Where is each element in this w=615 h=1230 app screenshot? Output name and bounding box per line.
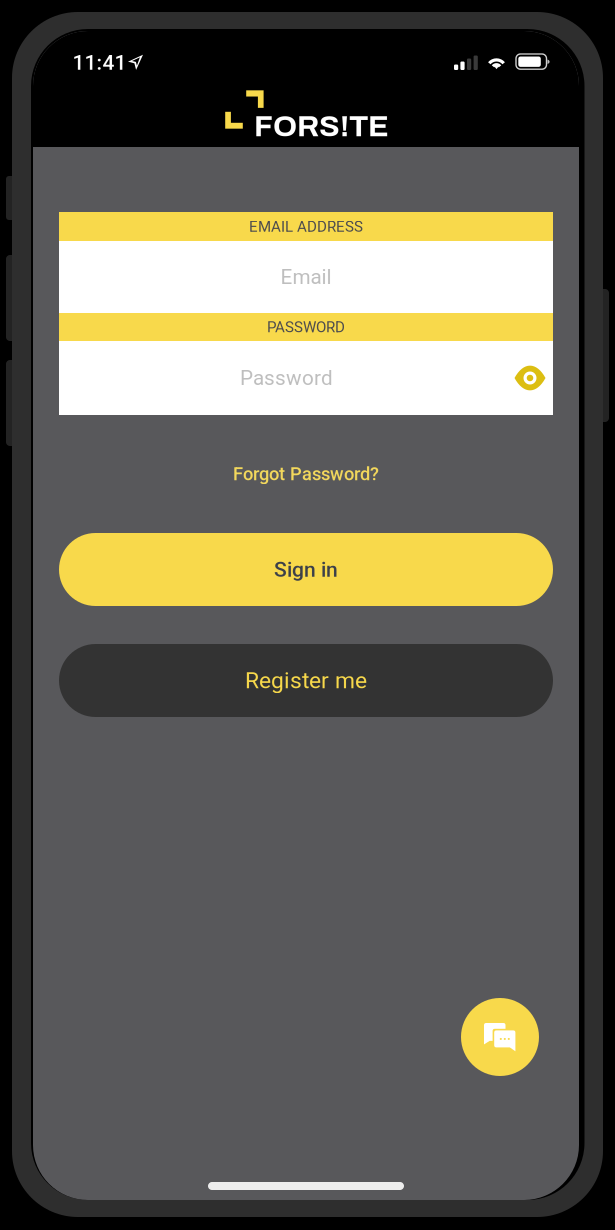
staticText: PASSWORD — [267, 318, 345, 336]
button[interactable]: Sign in — [59, 533, 553, 606]
button[interactable]: Show password — [499, 341, 561, 415]
staticText: Password — [240, 366, 333, 390]
staticText: Register me — [245, 667, 367, 694]
button[interactable]: Forgot Password? — [166, 454, 446, 494]
staticText: Email — [280, 265, 331, 289]
button[interactable]: Chat support — [461, 998, 539, 1076]
button[interactable]: Register me — [59, 644, 553, 717]
staticText: EMAIL ADDRESS — [249, 218, 363, 235]
staticText: FORS!TE — [254, 109, 389, 143]
staticText: Forgot Password? — [233, 463, 379, 485]
staticText: Sign in — [274, 557, 338, 582]
staticText: 11:41 — [72, 50, 126, 75]
